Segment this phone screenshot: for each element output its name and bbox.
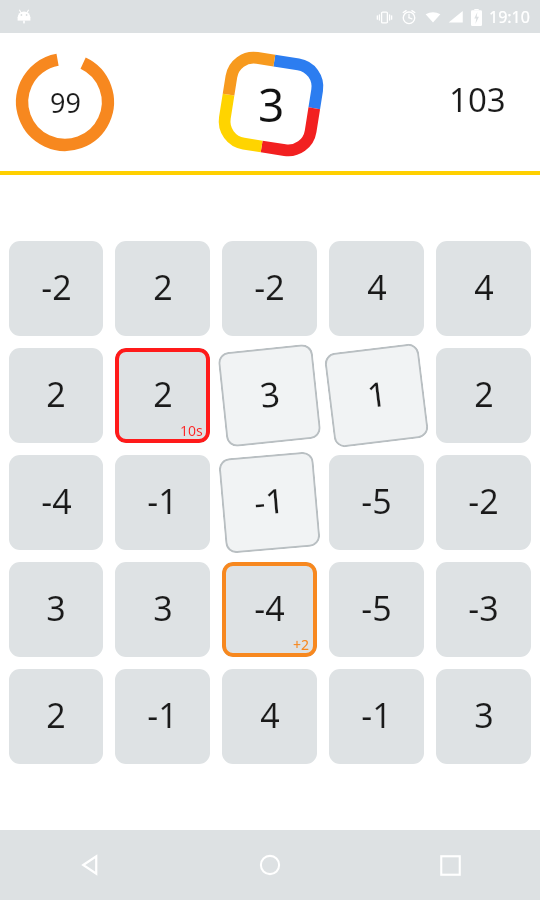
staticText: -1: [147, 692, 178, 738]
button[interactable]: 3: [217, 343, 322, 448]
button[interactable]: 2: [115, 241, 210, 336]
staticText: 2: [46, 371, 66, 417]
staticText: -2: [254, 264, 285, 310]
staticText: 3: [258, 73, 285, 136]
staticText: 3: [46, 585, 66, 631]
button[interactable]: -4: [222, 562, 317, 657]
staticText: 4: [260, 692, 280, 738]
button[interactable]: 3: [9, 562, 103, 657]
button[interactable]: 4: [329, 241, 424, 336]
staticText: 2: [153, 371, 173, 417]
button[interactable]: Recent apps: [360, 830, 540, 900]
staticText: 103: [449, 77, 506, 122]
staticText: 4: [367, 264, 387, 310]
button[interactable]: -1: [329, 669, 424, 764]
staticText: 2: [153, 264, 173, 310]
button[interactable]: -3: [436, 562, 531, 657]
button[interactable]: -4: [9, 455, 103, 550]
button[interactable]: 3: [115, 562, 210, 657]
staticText: -2: [41, 264, 72, 310]
button[interactable]: 2: [115, 348, 210, 443]
staticText: -4: [254, 585, 285, 631]
staticText: -5: [361, 585, 392, 631]
staticText: -4: [41, 478, 72, 524]
button[interactable]: 1: [324, 343, 429, 448]
button[interactable]: 2: [9, 669, 103, 764]
button[interactable]: -5: [329, 455, 424, 550]
staticText: 3: [474, 692, 494, 738]
button[interactable]: -5: [329, 562, 424, 657]
staticText: -5: [361, 478, 392, 524]
button[interactable]: -2: [9, 241, 103, 336]
staticText: 19:10: [489, 6, 530, 28]
button[interactable]: 2: [436, 348, 531, 443]
button[interactable]: 2: [9, 348, 103, 443]
button[interactable]: -1: [115, 669, 210, 764]
button[interactable]: -1: [218, 451, 321, 554]
button[interactable]: -1: [115, 455, 210, 550]
staticText: 10s: [180, 421, 203, 440]
staticText: -1: [147, 478, 178, 524]
staticText: -1: [252, 477, 287, 525]
staticText: 1: [364, 370, 390, 418]
button[interactable]: 3: [436, 669, 531, 764]
button[interactable]: 99: [16, 53, 114, 151]
button[interactable]: 4: [222, 669, 317, 764]
staticText: 4: [474, 264, 494, 310]
button[interactable]: -2: [436, 455, 531, 550]
button[interactable]: Home: [180, 830, 360, 900]
staticText: 3: [153, 585, 173, 631]
staticText: -1: [361, 692, 392, 738]
staticText: -2: [468, 478, 499, 524]
staticText: -3: [468, 585, 499, 631]
staticText: +2: [293, 635, 310, 654]
button[interactable]: -2: [222, 241, 317, 336]
button[interactable]: 4: [436, 241, 531, 336]
staticText: 99: [50, 84, 81, 121]
button[interactable]: 3: [215, 48, 327, 160]
staticText: 2: [46, 692, 66, 738]
staticText: 3: [257, 370, 282, 418]
staticText: 2: [474, 371, 494, 417]
